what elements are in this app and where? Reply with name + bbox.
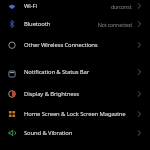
staticText: Other Wireless Connections bbox=[24, 41, 98, 49]
button[interactable]: Display & Brightness bbox=[0, 85, 150, 103]
staticText: Notification & Status Bar bbox=[24, 68, 90, 76]
button[interactable]: Home Screen & Lock Screen Magazine bbox=[0, 105, 150, 123]
staticText: Wi-Fi bbox=[24, 2, 37, 10]
staticText: Bluetooth bbox=[24, 20, 51, 28]
staticText: Home Screen & Lock Screen Magazine bbox=[24, 110, 126, 118]
staticText: Sound & Vibration bbox=[24, 129, 73, 137]
staticText: Not connected bbox=[98, 21, 132, 28]
button[interactable]: Wi-Fi bbox=[0, 0, 150, 15]
staticText: durconst bbox=[111, 3, 132, 10]
staticText: Display & Brightness bbox=[24, 90, 79, 98]
button[interactable]: Notification & Status Bar bbox=[0, 63, 150, 81]
button[interactable]: Sound & Vibration bbox=[0, 124, 150, 142]
button[interactable]: Bluetooth bbox=[0, 15, 150, 33]
button[interactable]: Other Wireless Connections bbox=[0, 36, 150, 54]
